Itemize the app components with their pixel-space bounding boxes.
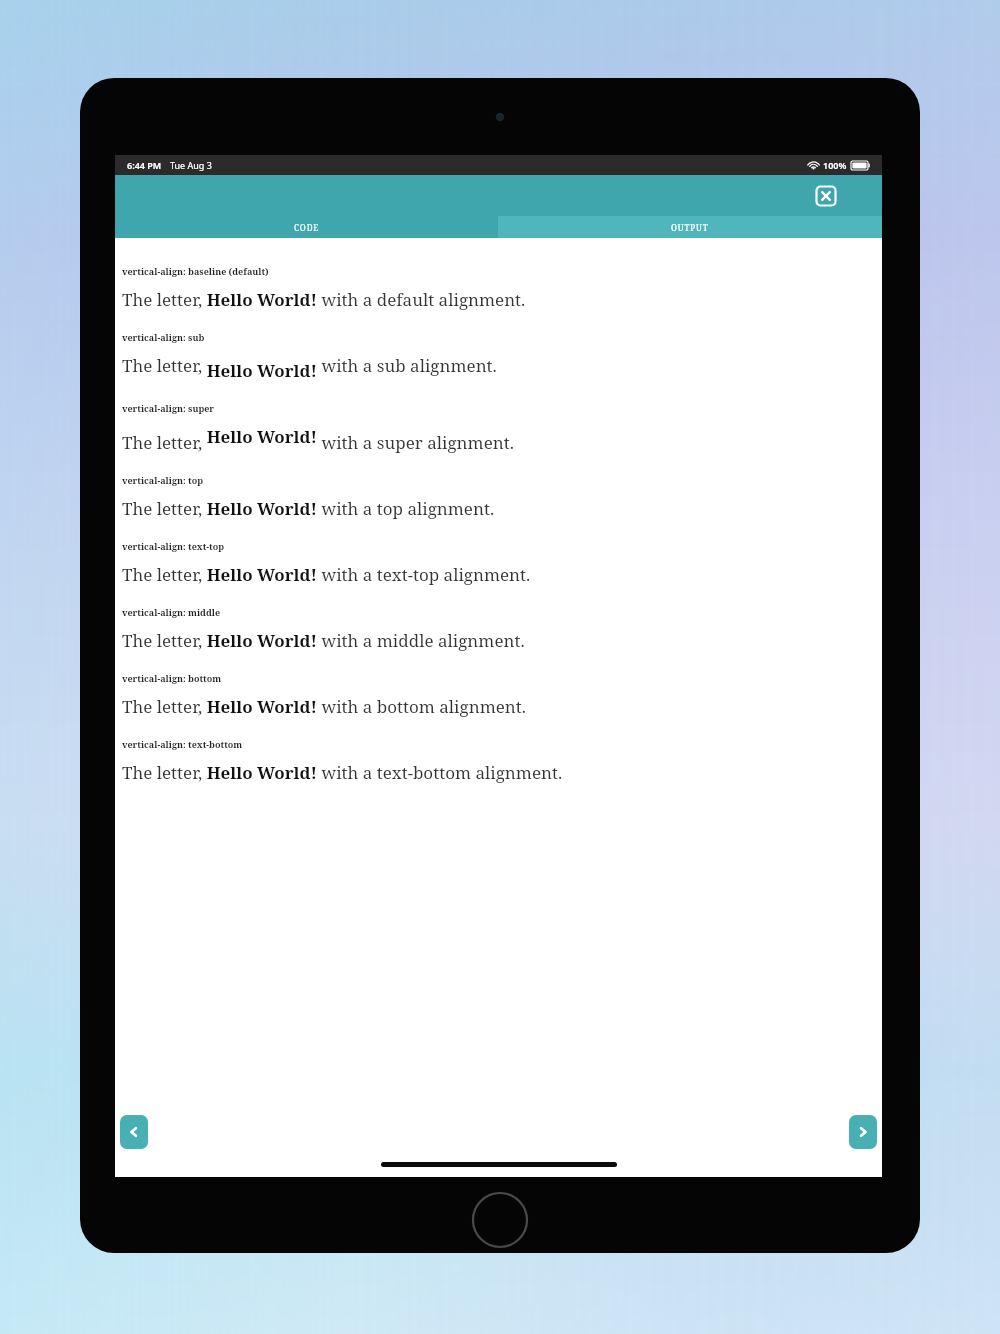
staticText: The letter, Hello World! with a top alig… — [122, 497, 495, 520]
staticText: vertical-align: sub — [122, 331, 205, 343]
staticText: vertical-align: baseline (default) — [122, 265, 269, 277]
button[interactable]: CODE — [115, 216, 498, 238]
button[interactable]: Close — [816, 186, 836, 206]
staticText: The letter, Hello World! with a text-bot… — [122, 761, 563, 784]
button[interactable]: Previous — [120, 1115, 148, 1149]
staticText: vertical-align: super — [122, 402, 215, 414]
staticText: OUTPUT — [671, 222, 709, 233]
staticText: vertical-align: text-bottom — [122, 738, 243, 750]
staticText: 6:44 PM — [127, 159, 162, 171]
staticText: The letter, Hello World! with a middle a… — [122, 629, 525, 652]
staticText: vertical-align: middle — [122, 606, 221, 618]
staticText: The letter, Hello World! with a text-top… — [122, 563, 531, 586]
button[interactable]: Next — [849, 1115, 877, 1149]
staticText: The letter, Hello World! with a sub alig… — [122, 354, 497, 382]
staticText: CODE — [294, 222, 320, 233]
button[interactable]: OUTPUT — [498, 216, 882, 238]
staticText: vertical-align: text-top — [122, 540, 225, 552]
staticText: The letter, Hello World! with a default … — [122, 288, 526, 311]
staticText: vertical-align: top — [122, 474, 204, 486]
staticText: vertical-align: bottom — [122, 672, 222, 684]
staticText: The letter, Hello World! with a super al… — [122, 425, 514, 454]
staticText: Tue Aug 3 — [170, 159, 212, 171]
staticText: The letter, Hello World! with a bottom a… — [122, 695, 527, 718]
staticText: 100% — [823, 159, 847, 171]
